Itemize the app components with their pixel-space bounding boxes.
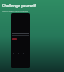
button[interactable] bbox=[11, 13, 30, 68]
staticText: Learn with your friends bbox=[2, 9, 29, 12]
staticText: Challenge yourself bbox=[2, 3, 36, 8]
